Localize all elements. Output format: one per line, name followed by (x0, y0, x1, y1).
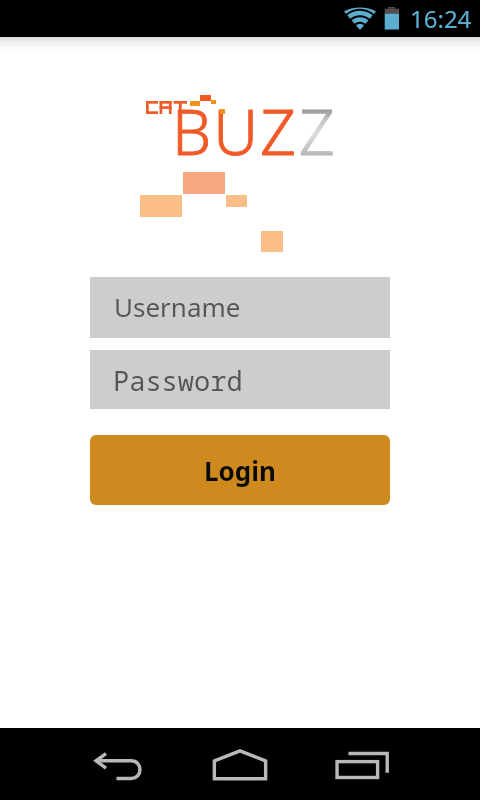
staticText: 16:24 (410, 2, 472, 35)
button[interactable]: Back (85, 745, 155, 787)
button[interactable]: Home (205, 743, 275, 787)
button[interactable]: Login (90, 435, 390, 505)
button[interactable]: Recent apps (328, 745, 398, 787)
staticText: Z (299, 89, 337, 173)
staticText: Password (113, 362, 243, 399)
staticText: Username (114, 289, 241, 324)
button[interactable]: Password (90, 350, 390, 409)
staticText: Login (204, 453, 276, 488)
staticText: BUZ (172, 89, 299, 173)
button[interactable]: Username (90, 277, 390, 338)
staticText: BUZ (172, 89, 299, 173)
staticText: Z (299, 89, 337, 173)
